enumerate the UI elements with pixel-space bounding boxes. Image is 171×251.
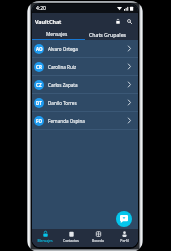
staticText: AO (36, 46, 43, 52)
staticText: FO (36, 118, 43, 124)
button[interactable]: CZ (32, 76, 138, 94)
button[interactable]: Encryption (114, 15, 122, 27)
button[interactable]: AO (32, 40, 138, 58)
button[interactable]: New chat (116, 211, 132, 227)
staticText: Mensajes (46, 31, 68, 38)
button[interactable]: Mensajes (32, 229, 58, 247)
staticText: VaultChat (35, 18, 62, 25)
button[interactable]: Mensajes (32, 29, 82, 39)
staticText: Chats Grupales (89, 31, 127, 38)
button[interactable]: Search (125, 15, 133, 27)
button[interactable]: Boveda (84, 229, 111, 247)
button[interactable]: CR (32, 58, 138, 76)
button[interactable]: FO (32, 112, 138, 130)
staticText: Mensajes (37, 238, 53, 243)
button[interactable]: Perfil (111, 229, 138, 247)
staticText: DT (36, 100, 42, 106)
staticText: Carolina Ruiz (48, 64, 77, 70)
staticText: Carlos Zapata (48, 82, 78, 88)
staticText: Boveda (92, 238, 104, 243)
staticText: Contactos (63, 238, 79, 243)
button[interactable]: DT (32, 94, 138, 112)
button[interactable]: Chats Grupales (82, 29, 133, 39)
staticText: CR (36, 64, 42, 70)
button[interactable]: Contactos (58, 229, 84, 247)
staticText: Fernanda Ospina (48, 118, 85, 124)
staticText: 4:20 (36, 5, 46, 12)
staticText: CZ (36, 82, 42, 88)
staticText: Danilo Torres (48, 100, 77, 106)
staticText: Perfil (120, 238, 129, 243)
staticText: Alvaro Ortega (48, 46, 78, 52)
